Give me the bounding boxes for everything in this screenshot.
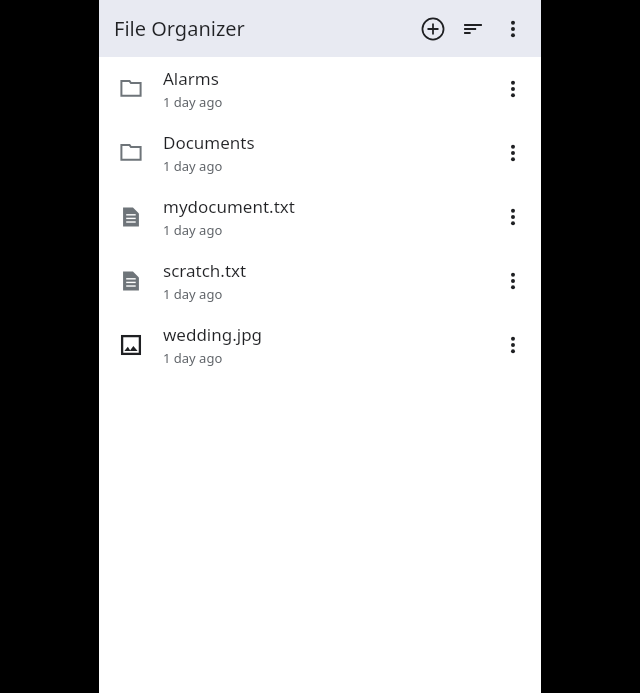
staticText: wedding.jpg: [163, 323, 263, 346]
staticText: 1 day ago: [163, 349, 223, 367]
button[interactable]: Alarms: [99, 57, 541, 121]
staticText: File Organizer: [114, 15, 245, 42]
button[interactable]: More options: [493, 9, 533, 49]
staticText: scratch.txt: [163, 259, 247, 282]
button[interactable]: Sort: [453, 9, 493, 49]
staticText: 1 day ago: [163, 93, 223, 111]
staticText: 1 day ago: [163, 285, 223, 303]
button[interactable]: More options for scratch.txt: [489, 257, 537, 305]
staticText: mydocument.txt: [163, 195, 295, 218]
button[interactable]: scratch.txt: [99, 249, 541, 313]
staticText: 1 day ago: [163, 221, 223, 239]
button[interactable]: More options for Alarms: [489, 65, 537, 113]
staticText: Alarms: [163, 67, 219, 90]
button[interactable]: Documents: [99, 121, 541, 185]
button[interactable]: More options for Documents: [489, 129, 537, 177]
staticText: Documents: [163, 131, 255, 154]
button[interactable]: Add: [413, 9, 453, 49]
button[interactable]: More options for wedding.jpg: [489, 321, 537, 369]
staticText: 1 day ago: [163, 157, 223, 175]
button[interactable]: mydocument.txt: [99, 185, 541, 249]
button[interactable]: More options for mydocument.txt: [489, 193, 537, 241]
button[interactable]: wedding.jpg: [99, 313, 541, 377]
